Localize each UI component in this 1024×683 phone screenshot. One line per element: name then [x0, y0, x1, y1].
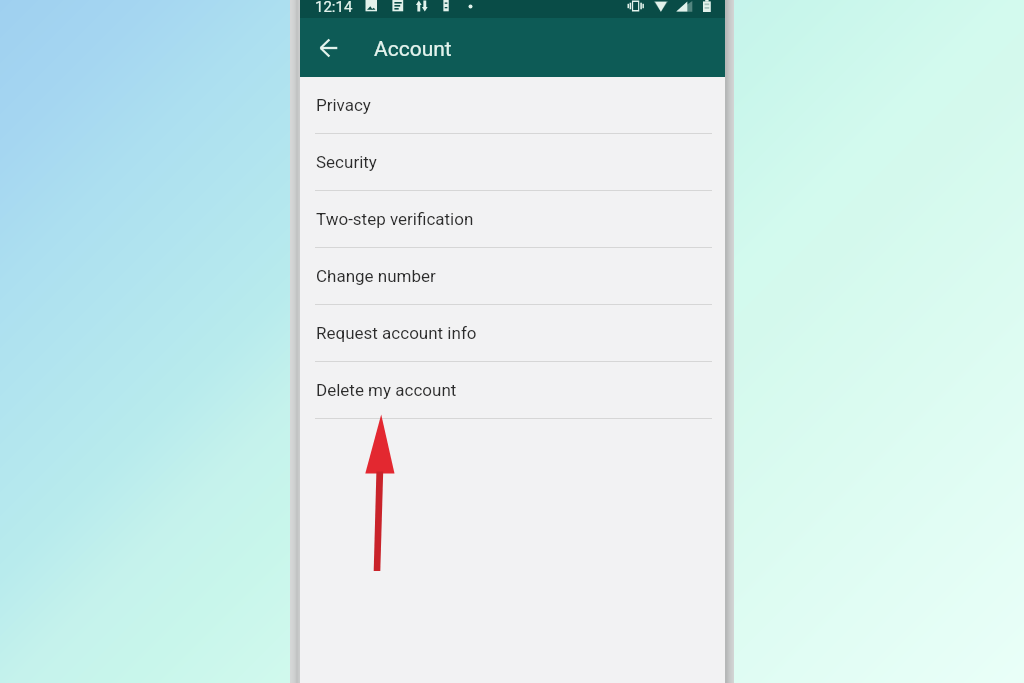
staticText: Account — [374, 37, 452, 62]
button[interactable]: Two-step verification — [300, 191, 725, 248]
staticText: Change number — [316, 266, 436, 286]
staticText: Privacy — [316, 95, 371, 115]
button[interactable]: Privacy — [300, 77, 725, 134]
staticText: Two-step verification — [316, 209, 474, 229]
button[interactable]: Change number — [300, 248, 725, 305]
staticText: Security — [316, 152, 377, 172]
button[interactable]: Security — [300, 134, 725, 191]
button[interactable]: Back — [312, 30, 348, 66]
staticText: Request account info — [316, 323, 477, 343]
button[interactable]: Delete my account — [300, 362, 725, 419]
staticText: Delete my account — [316, 380, 457, 400]
staticText: 12:14 — [315, 0, 353, 16]
button[interactable]: Request account info — [300, 305, 725, 362]
